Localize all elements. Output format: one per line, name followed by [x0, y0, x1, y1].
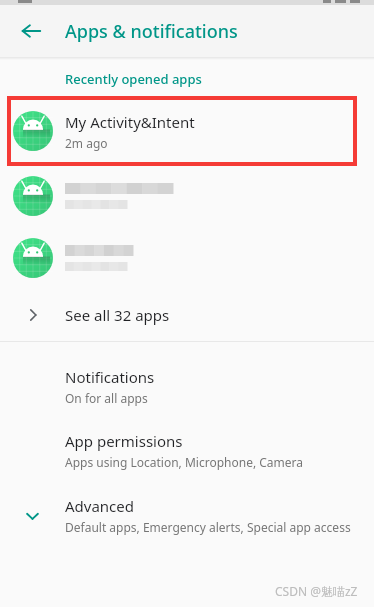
staticText: See all 32 apps [65, 305, 170, 325]
button[interactable] [0, 165, 374, 227]
button[interactable]: My Activity&Intent [0, 97, 374, 165]
staticText: CSDN @魅喵zZ [275, 583, 358, 599]
button[interactable]: Notifications [0, 363, 374, 410]
staticText: Apps using Location, Microphone, Camera [65, 454, 303, 470]
staticText: App permissions [65, 431, 183, 451]
staticText: 2m ago [65, 135, 108, 151]
button[interactable] [0, 227, 374, 289]
staticText: My Activity&Intent [65, 112, 195, 132]
button[interactable]: Back [9, 9, 53, 53]
staticText: Apps & notifications [65, 19, 238, 44]
button[interactable]: App permissions [0, 427, 374, 474]
staticText: Advanced [65, 496, 135, 516]
staticText: Notifications [65, 367, 155, 387]
staticText: Default apps, Emergency alerts, Special … [65, 519, 351, 535]
button[interactable]: Advanced [0, 491, 374, 539]
staticText: On for all apps [65, 390, 148, 406]
staticText: Recently opened apps [65, 70, 202, 88]
button[interactable]: See all 32 apps [0, 289, 374, 341]
